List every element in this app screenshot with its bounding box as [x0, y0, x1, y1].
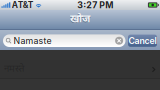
staticText: Namaste [13, 35, 51, 46]
staticText: खोज [70, 13, 90, 27]
button[interactable]: Clear search text [115, 37, 123, 45]
staticText: 3:27 PM [77, 0, 113, 10]
staticText: नमस्ते [4, 63, 24, 76]
staticText: खोज [70, 14, 90, 27]
staticText: Cancel [128, 35, 156, 46]
staticText: AT&T [12, 0, 34, 10]
button[interactable]: Cancel [128, 33, 157, 47]
